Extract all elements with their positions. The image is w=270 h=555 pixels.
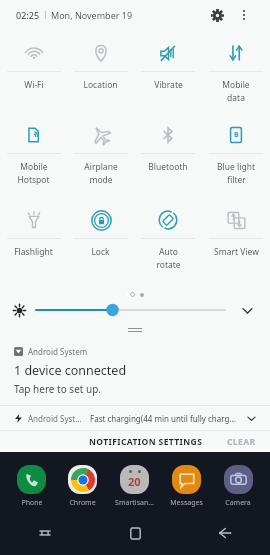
staticText: Vibrate — [154, 79, 183, 91]
staticText: CLEAR — [227, 436, 256, 448]
button[interactable] — [36, 300, 225, 320]
button[interactable]: Auto — [134, 201, 202, 286]
button[interactable]: More options — [234, 5, 254, 25]
staticText: Lock — [91, 246, 110, 258]
staticText: rotate — [156, 259, 181, 271]
button[interactable]: Mobile — [0, 116, 67, 201]
button[interactable]: Lock — [67, 201, 134, 286]
button[interactable]: Airplane — [67, 116, 134, 201]
staticText: 1 device connected — [14, 362, 127, 379]
button[interactable]: NOTIFICATION SETTINGS — [81, 432, 211, 452]
button[interactable]: Camera — [212, 457, 264, 515]
button[interactable]: B — [202, 116, 270, 201]
staticText: Blue light — [217, 161, 255, 173]
staticText: 20 — [128, 474, 141, 489]
button[interactable]: Location — [67, 34, 134, 116]
button[interactable]: Bluetooth — [134, 116, 202, 201]
staticText: Location — [83, 79, 118, 91]
staticText: Android System — [28, 346, 88, 357]
staticText: Airplane — [84, 161, 118, 173]
staticText: NOTIFICATION SETTINGS — [89, 436, 203, 448]
staticText: 02:25 — [16, 9, 40, 21]
button[interactable]: Expand brightness — [237, 300, 257, 320]
button[interactable]: Android Syst... — [0, 406, 270, 430]
button[interactable]: Recents — [0, 515, 90, 551]
button[interactable]: Messages — [160, 457, 212, 515]
button[interactable]: Back — [180, 515, 270, 551]
button[interactable]: Android System — [0, 343, 270, 405]
staticText: Flashlight — [14, 246, 53, 258]
button[interactable]: Smart View — [202, 201, 270, 286]
staticText: Hotspot — [17, 174, 50, 186]
staticText: Android Syst... — [28, 413, 82, 424]
staticText: Tap here to set up. — [14, 382, 102, 396]
staticText: Wi-Fi — [24, 79, 44, 91]
staticText: Mobile — [20, 161, 48, 173]
staticText: mode — [89, 174, 113, 186]
staticText: filter — [227, 174, 246, 186]
button[interactable]: Chrome — [57, 457, 108, 515]
button[interactable]: Wi-Fi — [0, 34, 67, 116]
staticText: Phone — [21, 498, 43, 508]
button[interactable]: Phone — [6, 457, 57, 515]
staticText: Smartisan... — [115, 498, 154, 508]
staticText: Mon, November 19 — [51, 9, 133, 21]
button[interactable]: Settings — [206, 4, 228, 26]
staticText: Chrome — [69, 498, 96, 508]
button[interactable]: Mobile — [202, 34, 270, 116]
staticText: Mobile — [222, 79, 250, 91]
button[interactable]: 20 — [108, 457, 160, 515]
staticText: B — [234, 130, 239, 140]
staticText: Fast charging(44 min until fully charg..… — [90, 413, 236, 424]
button[interactable]: Flashlight — [0, 201, 67, 286]
staticText: Auto — [159, 246, 178, 258]
button[interactable]: Home — [90, 515, 180, 551]
staticText: Messages — [170, 498, 203, 508]
staticText: Smart View — [214, 246, 259, 258]
button[interactable]: Vibrate — [134, 34, 202, 116]
button[interactable]: CLEAR — [219, 432, 264, 452]
staticText: Camera — [225, 498, 251, 508]
staticText: Bluetooth — [148, 161, 188, 173]
staticText: data — [227, 92, 245, 104]
